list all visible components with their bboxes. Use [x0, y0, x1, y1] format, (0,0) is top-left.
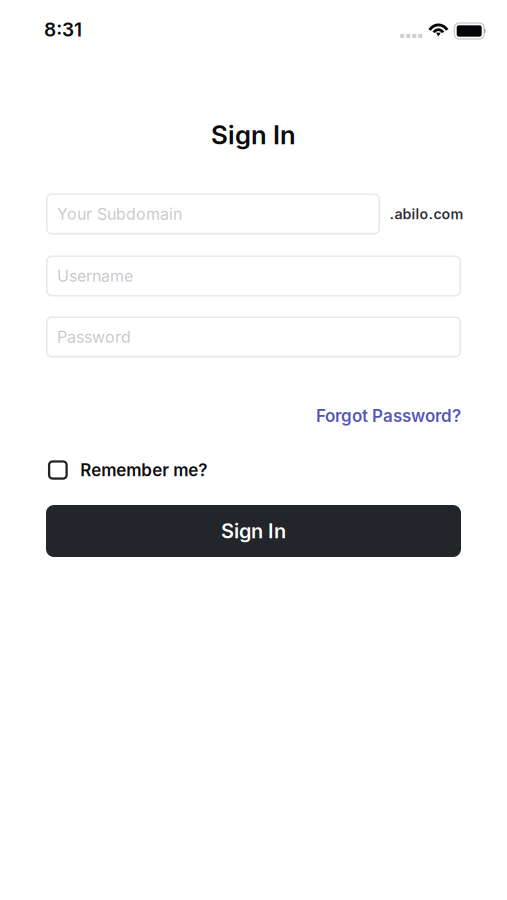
button[interactable]: Remember me?: [44, 460, 463, 480]
staticText: Forgot Password?: [316, 405, 461, 426]
staticText: Remember me?: [80, 460, 207, 480]
staticText: .abilo.com: [390, 205, 464, 223]
staticText: Username: [57, 266, 133, 286]
staticText: Password: [57, 327, 131, 347]
staticText: Sign In: [211, 119, 296, 150]
button[interactable]: Sign In: [46, 505, 461, 557]
button[interactable]: Forgot Password?: [316, 405, 461, 426]
staticText: Your Subdomain: [57, 204, 182, 224]
staticText: 8:31: [44, 18, 82, 41]
staticText: Sign In: [221, 519, 286, 543]
